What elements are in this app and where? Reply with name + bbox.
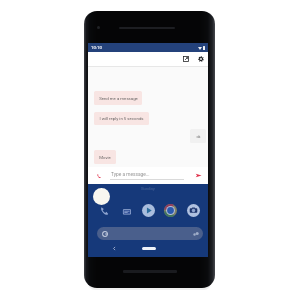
button[interactable]: Messages [119,204,132,217]
button[interactable]: Movie [94,150,116,164]
button[interactable]: Home [142,247,156,250]
button[interactable]: Call [96,173,102,179]
staticText: Movie [99,155,111,160]
staticText: ok [196,134,201,138]
button[interactable]: Camera [187,204,200,217]
button[interactable]: Send me a message [94,91,142,105]
button[interactable]: Phone [98,204,111,217]
staticText: Sunday [141,186,155,191]
button[interactable]: Send [195,172,202,179]
button[interactable]: Open in new window [183,56,189,62]
staticText: I will reply in 5 seconds [99,116,144,121]
staticText: Send me a message [99,96,138,101]
button[interactable]: Settings [198,56,204,62]
button[interactable]: I will reply in 5 seconds [94,112,149,125]
staticText: Type a message... [111,172,150,178]
staticText: 10:10 [91,45,102,50]
button[interactable]: Play Store [142,204,155,217]
button[interactable]: Chrome [164,204,177,217]
button[interactable]: Search [97,227,203,240]
button[interactable]: ok [190,129,206,143]
button[interactable]: Back [112,246,117,251]
